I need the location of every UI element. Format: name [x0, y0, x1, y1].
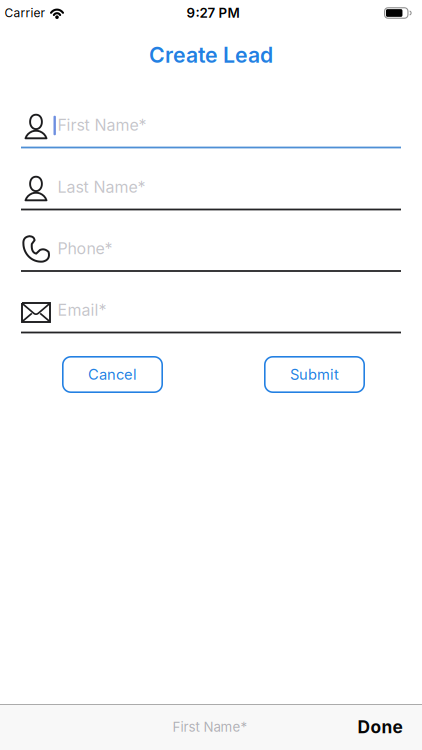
- button[interactable]: First Name*: [0, 105, 422, 145]
- staticText: Last Name*: [58, 178, 146, 196]
- button[interactable]: Submit: [264, 356, 365, 393]
- staticText: Done: [357, 717, 402, 737]
- staticText: Create Lead: [149, 42, 273, 68]
- button[interactable]: Phone*: [0, 229, 422, 269]
- button[interactable]: Done: [340, 704, 420, 749]
- button[interactable]: Last Name*: [0, 167, 422, 207]
- staticText: Email*: [58, 301, 107, 319]
- button[interactable]: Cancel: [62, 356, 163, 393]
- staticText: Submit: [290, 366, 339, 383]
- staticText: 9:27 PM: [186, 5, 239, 21]
- staticText: Phone*: [58, 239, 113, 258]
- button[interactable]: Email*: [0, 290, 422, 330]
- staticText: First Name*: [172, 719, 247, 735]
- staticText: Carrier: [4, 6, 45, 20]
- staticText: Cancel: [88, 366, 137, 383]
- staticText: First Name*: [58, 116, 147, 134]
